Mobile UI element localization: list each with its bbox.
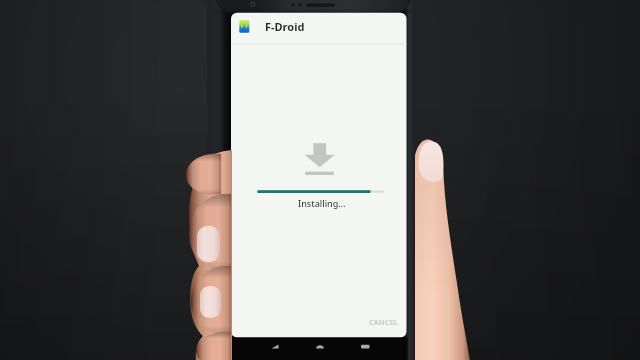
staticText: CANCEL — [369, 317, 398, 327]
button[interactable]: F-Droid — [265, 19, 305, 34]
staticText: F-Droid — [265, 19, 305, 34]
button[interactable]: CANCEL — [369, 317, 398, 327]
staticText: Installing… — [298, 197, 346, 209]
